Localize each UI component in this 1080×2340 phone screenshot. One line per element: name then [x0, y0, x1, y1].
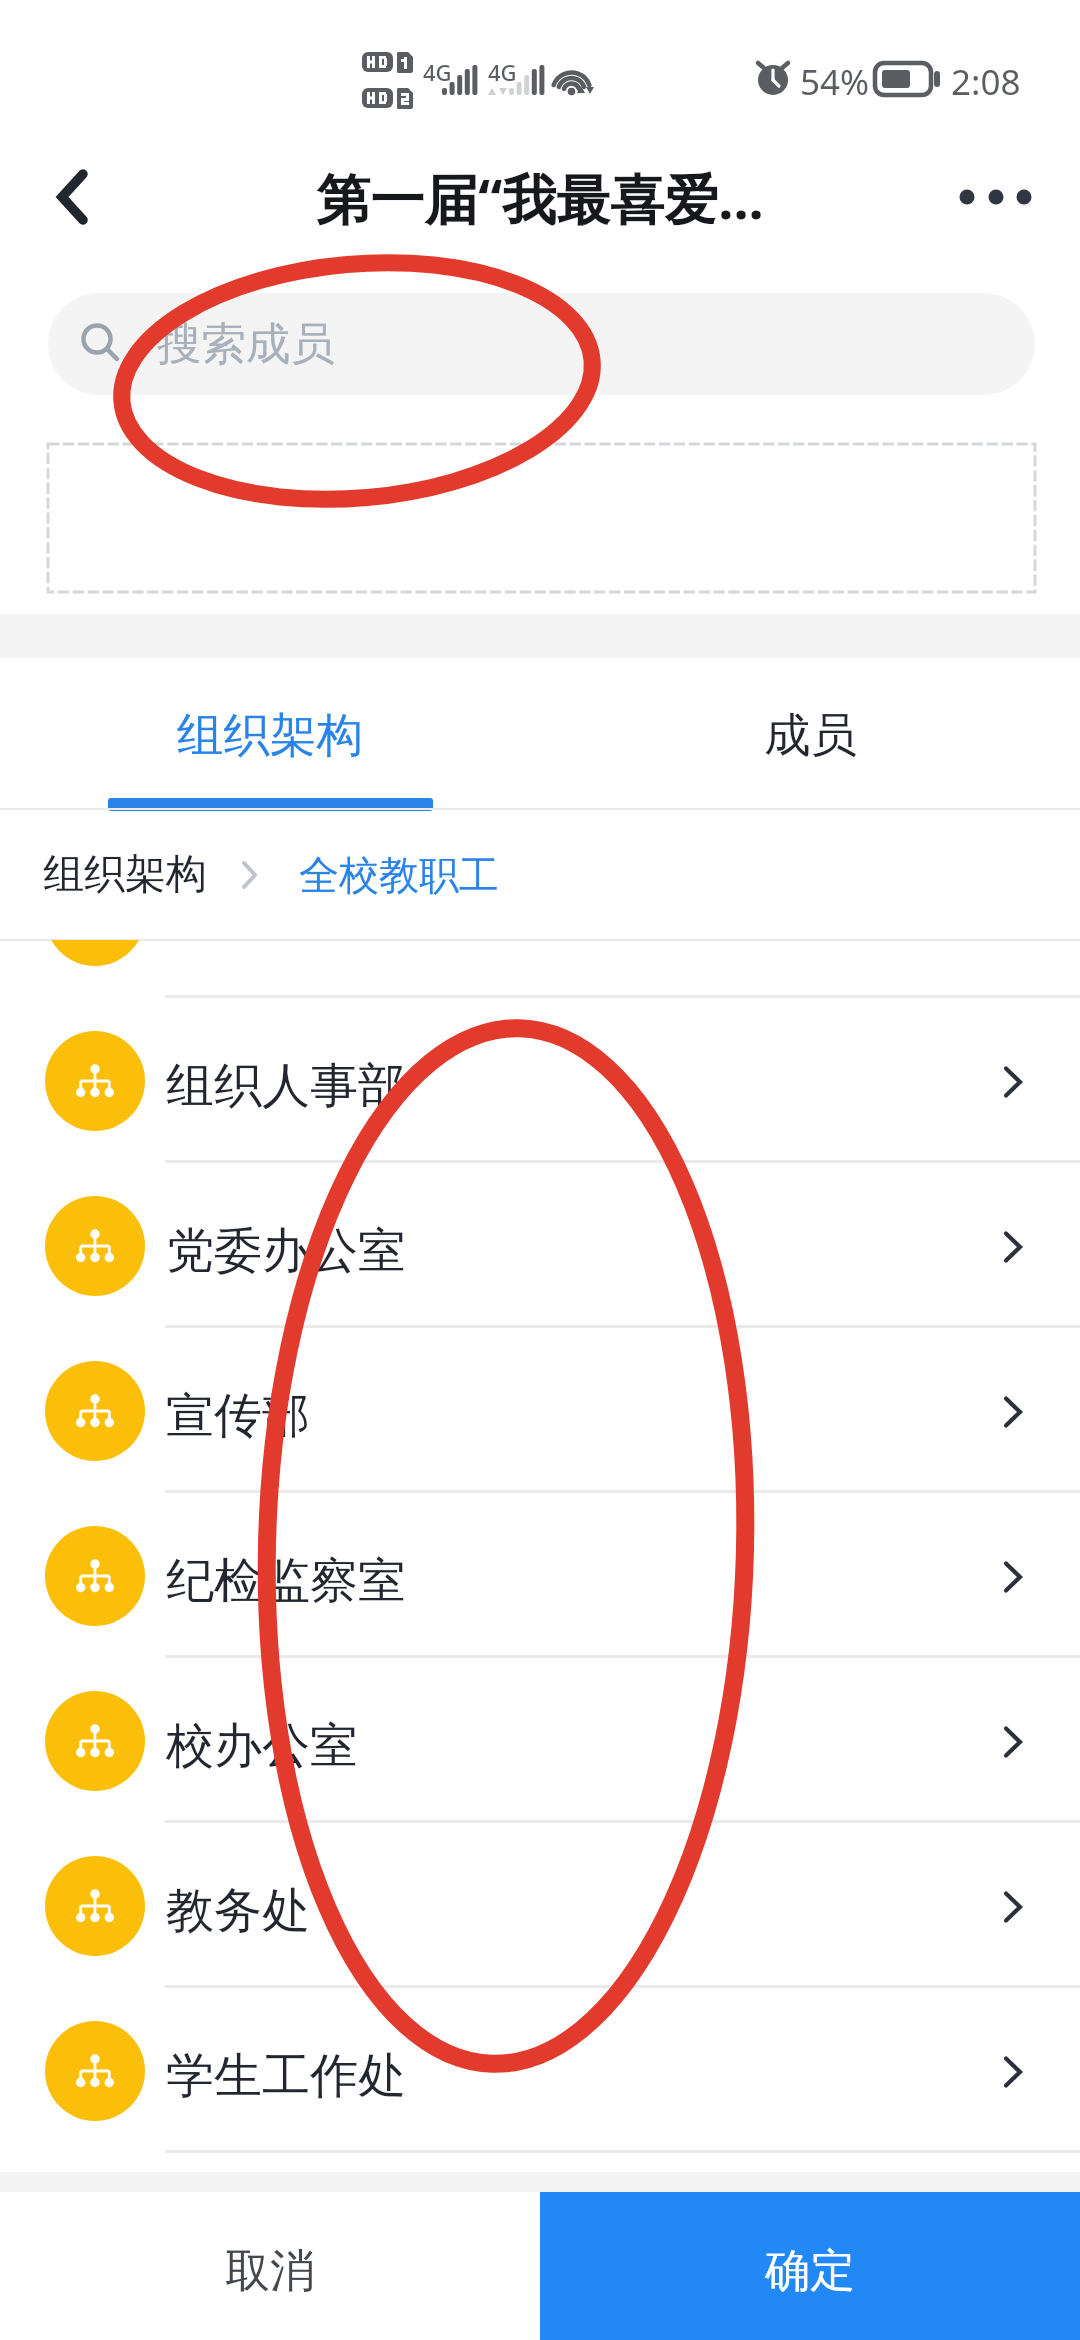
- staticText: 校办公室: [166, 1716, 358, 1776]
- button[interactable]: 校办公室: [0, 1658, 1080, 1823]
- staticText: 54%: [800, 58, 870, 106]
- staticText: 组织架构: [43, 849, 207, 901]
- button[interactable]: More options: [930, 137, 1060, 257]
- staticText: 教务处: [166, 1881, 310, 1941]
- button[interactable]: 搜索成员: [48, 293, 1035, 395]
- button[interactable]: 组织人事部: [0, 998, 1080, 1163]
- button[interactable]: [0, 940, 1080, 998]
- button[interactable]: 组织架构: [0, 658, 540, 810]
- button[interactable]: 组织架构: [43, 829, 207, 921]
- staticText: 学生工作处: [166, 2046, 406, 2106]
- button[interactable]: 全校教职工: [299, 830, 499, 920]
- button[interactable]: 成员: [540, 658, 1080, 810]
- staticText: 组织人事部: [166, 1056, 406, 1116]
- staticText: 党委办公室: [166, 1221, 406, 1281]
- staticText: 第一届“我最喜爱...: [316, 161, 764, 235]
- staticText: 纪检监察室: [166, 1551, 406, 1611]
- staticText: 2:08: [951, 58, 1021, 106]
- button[interactable]: 学生工作处: [0, 1988, 1080, 2153]
- staticText: 搜索成员: [157, 316, 335, 372]
- button[interactable]: Back: [10, 137, 135, 257]
- button[interactable]: 党委办公室: [0, 1163, 1080, 1328]
- staticText: 组织架构: [177, 706, 363, 765]
- staticText: 取消: [225, 2243, 315, 2300]
- staticText: 确定: [765, 2243, 855, 2300]
- button[interactable]: 纪检监察室: [0, 1493, 1080, 1658]
- button[interactable]: 教务处: [0, 1823, 1080, 1988]
- staticText: 宣传部: [166, 1386, 310, 1446]
- staticText: 全校教职工: [299, 850, 499, 900]
- button[interactable]: 取消: [0, 2192, 540, 2340]
- staticText: 4G: [488, 57, 517, 87]
- staticText: 4G: [423, 57, 452, 87]
- staticText: 成员: [764, 706, 857, 765]
- button[interactable]: 确定: [540, 2192, 1080, 2340]
- button[interactable]: 宣传部: [0, 1328, 1080, 1493]
